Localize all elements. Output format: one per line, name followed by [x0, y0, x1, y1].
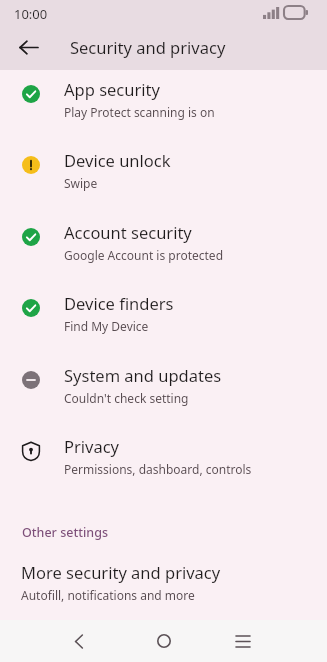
staticText: Security and privacy	[70, 36, 226, 58]
button[interactable]: Back	[59, 621, 99, 661]
button[interactable]: Home	[144, 621, 184, 661]
button[interactable]: App security	[0, 70, 327, 141]
staticText: Device finders	[64, 292, 174, 314]
staticText: Couldn't check setting	[64, 390, 189, 406]
button[interactable]: Device unlock	[0, 141, 327, 212]
button[interactable]: Privacy	[0, 427, 327, 498]
staticText: Google Account is protected	[64, 247, 224, 263]
staticText: Privacy	[64, 435, 120, 457]
staticText: More security and privacy	[21, 561, 221, 583]
staticText: Find My Device	[64, 318, 149, 334]
staticText: Swipe	[64, 175, 98, 191]
staticText: Permissions, dashboard, controls	[64, 461, 252, 477]
button[interactable]: Account security	[0, 213, 327, 284]
staticText: System and updates	[64, 364, 222, 386]
button[interactable]: Device finders	[0, 284, 327, 355]
button[interactable]: Recent apps	[223, 621, 263, 661]
button[interactable]: Back	[8, 27, 48, 67]
staticText: Autofill, notifications and more	[21, 587, 195, 603]
staticText: 10:00	[14, 5, 48, 23]
button[interactable]: System and updates	[0, 356, 327, 427]
staticText: Other settings	[22, 524, 109, 541]
staticText: Play Protect scanning is on	[64, 104, 215, 120]
staticText: Device unlock	[64, 149, 171, 171]
staticText: Account security	[64, 221, 192, 243]
staticText: App security	[64, 78, 160, 100]
button[interactable]: More security and privacy	[0, 552, 327, 612]
